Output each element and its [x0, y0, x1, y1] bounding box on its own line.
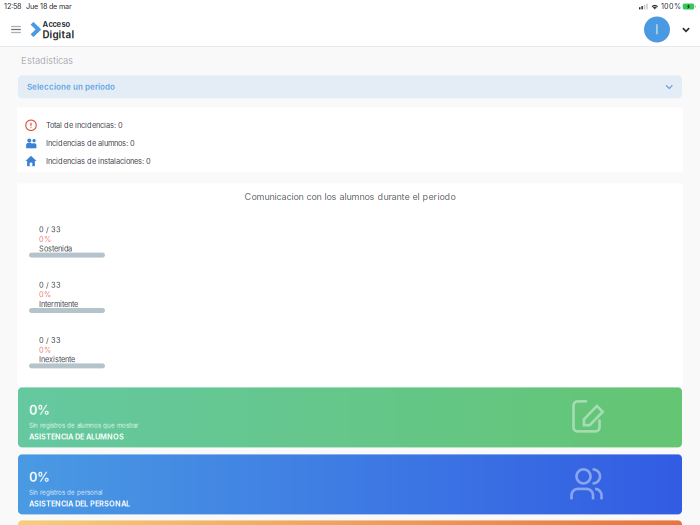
staticText: Digital — [42, 29, 74, 41]
staticText: Acceso — [42, 20, 70, 29]
staticText: 0% — [39, 235, 51, 244]
staticText: Total de incidencias: 0 — [46, 121, 123, 130]
button[interactable]: 0% — [18, 520, 682, 525]
staticText: Seleccione un periodo — [27, 82, 115, 92]
button[interactable]: Seleccione un periodo — [18, 75, 682, 98]
staticText: 12:58 — [4, 2, 21, 11]
staticText: 0% — [29, 403, 50, 418]
staticText: 0% — [29, 470, 50, 485]
staticText: ASISTENCIA DE ALUMNOS — [29, 432, 124, 441]
button[interactable]: Acceso Digital — [30, 18, 74, 41]
button[interactable]: Account menu — [678, 21, 694, 38]
staticText: 0 / 33 — [39, 281, 61, 289]
staticText: 0 / 33 — [39, 336, 61, 345]
staticText: 100% — [661, 2, 681, 11]
staticText: Comunicacion con los alumnos durante el … — [244, 191, 455, 202]
staticText: Sin registros de personal — [29, 489, 102, 496]
staticText: 0 / 33 — [39, 225, 61, 234]
staticText: Incidencias de instalaciones: 0 — [46, 157, 151, 166]
staticText: I — [655, 21, 659, 37]
button[interactable]: 0% — [18, 387, 682, 447]
staticText: 0% — [39, 346, 51, 354]
staticText: Intermitente — [39, 300, 78, 309]
staticText: Incidencias de alumnos: 0 — [46, 139, 135, 148]
staticText: Estadisticas — [21, 55, 73, 66]
staticText: Sostenida — [39, 244, 72, 253]
staticText: ASISTENCIA DEL PERSONAL — [29, 499, 130, 508]
button[interactable]: 0% — [18, 454, 682, 514]
staticText: Jue 18 de mar — [26, 2, 72, 11]
button[interactable]: Account — [644, 16, 670, 42]
staticText: Sin registros de alumnos que mostrar — [29, 422, 138, 429]
staticText: 0% — [39, 290, 51, 299]
staticText: Inexistente — [39, 355, 75, 364]
button[interactable]: Menu — [6, 18, 26, 40]
